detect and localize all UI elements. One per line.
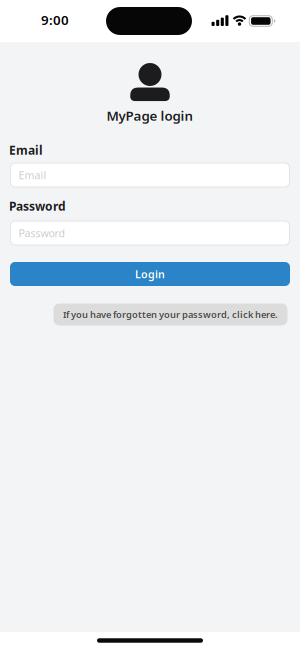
staticText: 9:00	[41, 11, 69, 29]
staticText: Email	[9, 142, 43, 158]
staticText: Password	[18, 226, 65, 240]
staticText: If you have forgotten your password, cli…	[63, 308, 278, 321]
button[interactable]: If you have forgotten your password, cli…	[53, 303, 287, 325]
staticText: Login	[135, 267, 165, 281]
staticText: MyPage login	[106, 107, 193, 124]
button[interactable]: Email	[10, 162, 290, 187]
staticText: Password	[9, 198, 66, 214]
button[interactable]: Password	[10, 220, 290, 245]
staticText: Email	[18, 168, 46, 182]
button[interactable]: Login	[10, 262, 290, 286]
